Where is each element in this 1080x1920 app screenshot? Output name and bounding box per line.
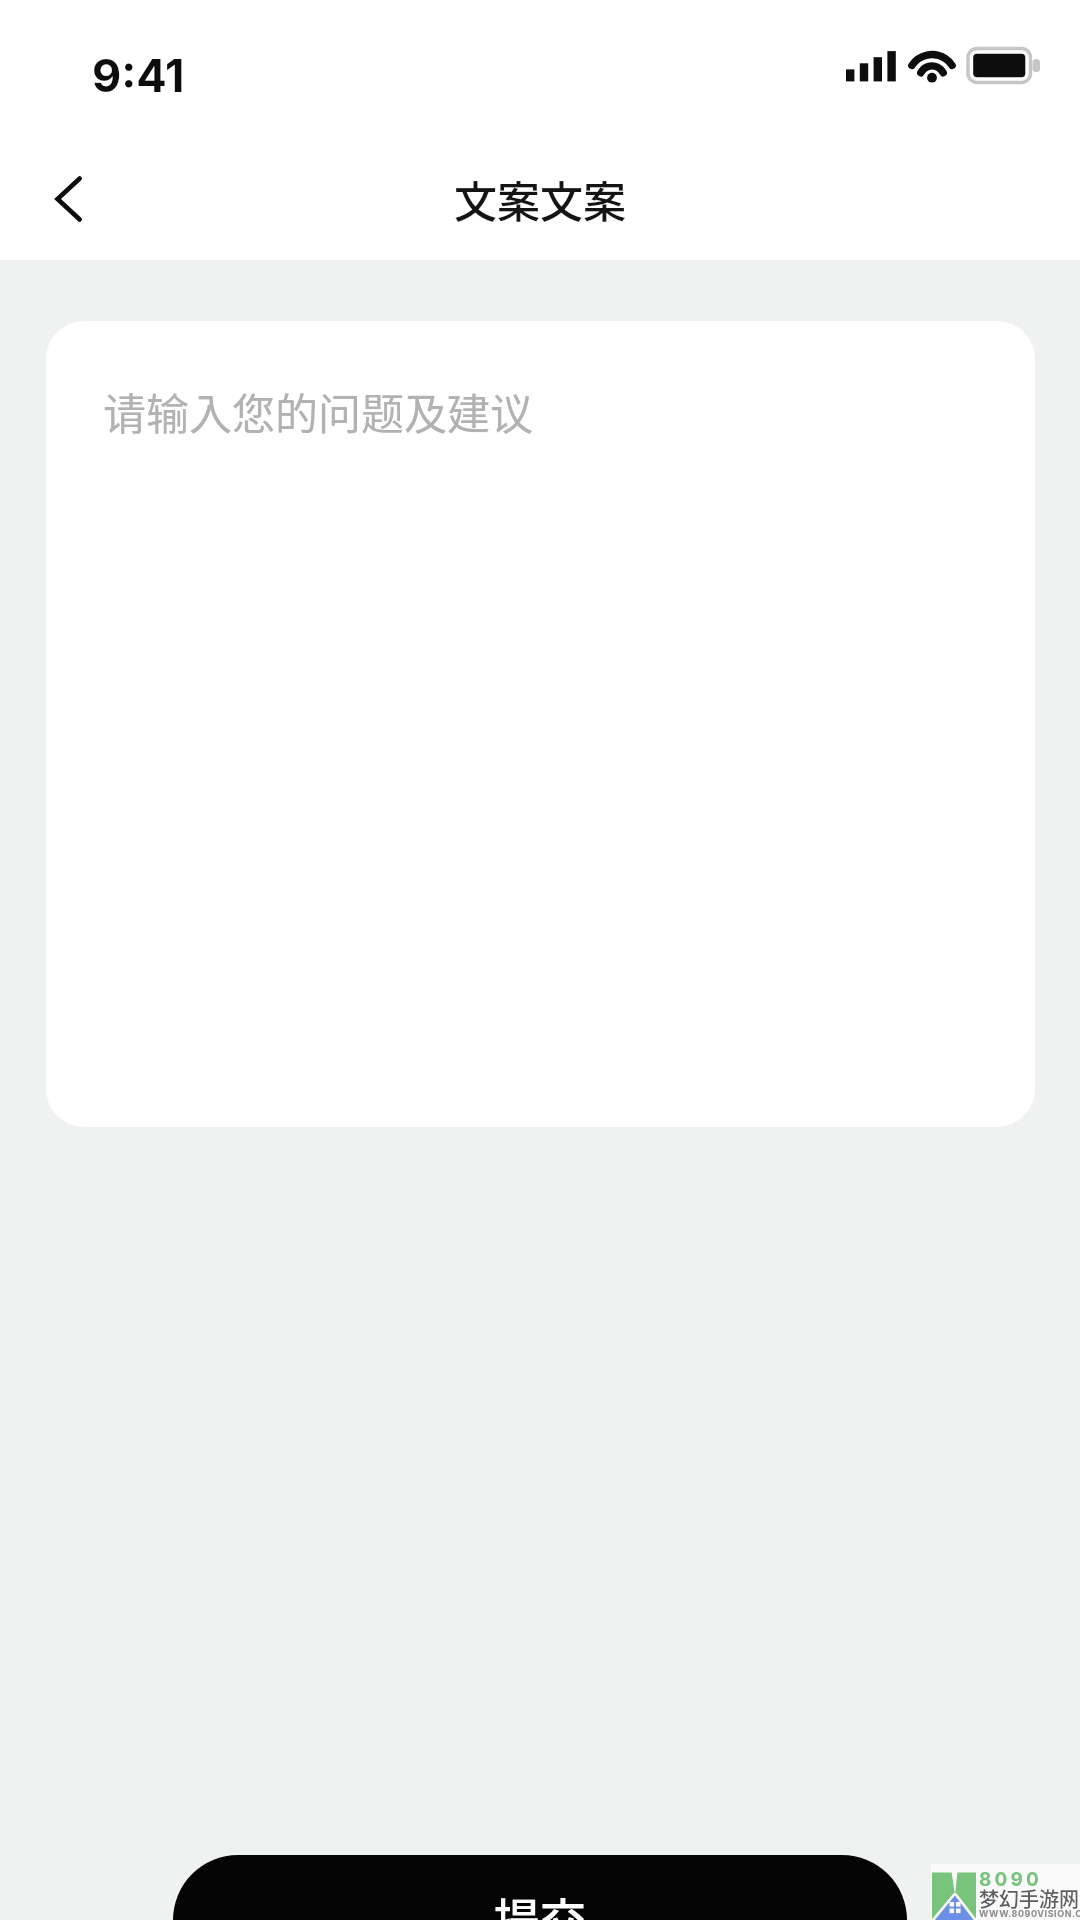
staticText: 提交 [494, 1884, 586, 1920]
staticText: WWW.8090VISION.COM [979, 1908, 1080, 1919]
staticText: 请输入您的问题及建议 [103, 380, 533, 442]
staticText: 文案文案 [454, 168, 626, 230]
staticText: 8090 [979, 1868, 1043, 1891]
button[interactable]: 请输入您的问题及建议 [46, 321, 1035, 1127]
button[interactable]: 提交 [173, 1855, 907, 1920]
staticText: 梦幻手游网 [979, 1884, 1079, 1913]
staticText: 9:41 [92, 48, 185, 102]
button[interactable]: Back [20, 151, 116, 247]
